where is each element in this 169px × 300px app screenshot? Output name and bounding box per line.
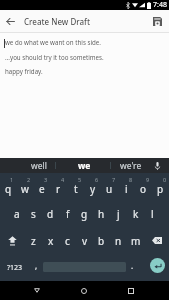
button[interactable]: j	[110, 200, 127, 227]
button[interactable]: Back	[0, 10, 21, 33]
button[interactable]: ?123	[0, 254, 30, 281]
button[interactable]: Save	[145, 10, 169, 33]
button[interactable]: m	[127, 227, 144, 254]
staticText: v	[82, 234, 88, 248]
staticText: ?123	[7, 263, 23, 273]
button[interactable]: h	[93, 200, 110, 227]
button[interactable]: 9	[135, 173, 152, 200]
staticText: y	[90, 182, 96, 196]
button[interactable]: .	[126, 254, 139, 281]
button[interactable]: 8	[118, 173, 135, 200]
staticText: 8	[129, 176, 133, 183]
staticText: 2	[27, 176, 31, 183]
button[interactable]: v	[76, 227, 93, 254]
staticText: ,	[35, 260, 38, 271]
button[interactable]: 4	[50, 173, 67, 200]
button[interactable]: 7	[101, 173, 118, 200]
button[interactable]: x	[42, 227, 59, 254]
staticText: happy friday.	[5, 67, 43, 75]
button[interactable]: b	[93, 227, 110, 254]
staticText: w	[21, 182, 29, 196]
button[interactable]: Enter	[150, 258, 165, 273]
staticText: d	[47, 207, 54, 221]
staticText: c	[65, 234, 70, 248]
staticText: 1	[10, 176, 14, 183]
button[interactable]: we	[56, 158, 112, 173]
staticText: z	[31, 234, 36, 248]
button[interactable]: 5	[67, 173, 84, 200]
staticText: l	[151, 207, 154, 221]
staticText: u	[106, 182, 113, 196]
button[interactable]: a	[8, 200, 25, 227]
button[interactable]: 0	[152, 173, 169, 200]
staticText: q	[5, 182, 12, 196]
staticText: 6	[95, 176, 99, 183]
staticText: r	[56, 182, 61, 196]
button[interactable]: ,	[30, 254, 43, 281]
staticText: 4	[61, 176, 65, 183]
staticText: well	[31, 160, 47, 172]
button[interactable]: 1	[0, 173, 16, 200]
staticText: we're	[120, 160, 142, 172]
button[interactable]: well	[20, 158, 58, 173]
button[interactable]: Backspace	[144, 227, 169, 254]
button[interactable]: Recents	[111, 281, 151, 300]
staticText: p	[157, 182, 164, 196]
button[interactable]: f	[59, 200, 76, 227]
button[interactable]: g	[76, 200, 93, 227]
staticText: .	[131, 260, 134, 271]
button[interactable]: Back	[17, 281, 57, 300]
button[interactable]: Voice input	[149, 158, 165, 173]
staticText: j	[117, 207, 120, 221]
button[interactable]: n	[110, 227, 127, 254]
staticText: x	[48, 234, 54, 248]
staticText: k	[133, 207, 139, 221]
button[interactable]: l	[144, 200, 161, 227]
button[interactable]: 6	[84, 173, 101, 200]
staticText: 9	[146, 176, 150, 183]
button[interactable]: c	[59, 227, 76, 254]
staticText: m	[131, 234, 141, 248]
staticText: ...you should try it too sometimes.	[5, 53, 104, 61]
staticText: t	[74, 182, 78, 196]
staticText: o	[140, 182, 147, 196]
staticText: h	[98, 207, 105, 221]
button[interactable]: k	[127, 200, 144, 227]
staticText: i	[125, 182, 128, 196]
staticText: 3	[44, 176, 48, 183]
button[interactable]: 3	[33, 173, 50, 200]
button[interactable]: we're	[111, 158, 151, 173]
button[interactable]: z	[25, 227, 42, 254]
staticText: n	[115, 234, 122, 248]
button[interactable]: Home	[64, 281, 104, 300]
staticText: f	[66, 207, 70, 221]
staticText: 7	[112, 176, 116, 183]
staticText: Create New Draft	[24, 16, 90, 27]
staticText: 0	[163, 176, 167, 183]
staticText: we do what we want on this side.	[5, 38, 101, 46]
button[interactable]: d	[42, 200, 59, 227]
staticText: s	[31, 207, 36, 221]
staticText: b	[98, 234, 105, 248]
staticText: e	[39, 182, 45, 196]
staticText: a	[14, 207, 20, 221]
button[interactable]: Shift	[0, 227, 25, 254]
staticText: g	[81, 207, 88, 221]
button[interactable]: s	[25, 200, 42, 227]
button[interactable]: 2	[16, 173, 33, 200]
staticText: we	[78, 160, 91, 172]
staticText: 5	[78, 176, 82, 183]
staticText: 7:48	[153, 0, 167, 10]
